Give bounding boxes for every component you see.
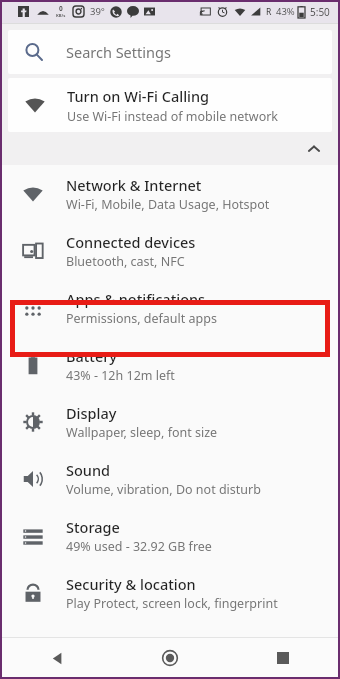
staticText: Search Settings (66, 42, 171, 62)
button[interactable]: Sound (0, 450, 340, 507)
staticText: Sound (66, 460, 111, 480)
staticText: Wallpaper, sleep, font size (66, 424, 218, 441)
button[interactable]: Recents (261, 637, 305, 679)
staticText: 5:50 (310, 5, 330, 19)
staticText: Network & Internet (66, 175, 202, 195)
button[interactable]: Turn on Wi-Fi Calling (8, 78, 332, 132)
button[interactable]: Storage (0, 507, 340, 564)
staticText: Connected devices (66, 232, 196, 252)
button[interactable]: Back (35, 637, 79, 679)
staticText: Apps & notifications (66, 289, 206, 309)
staticText: Turn on Wi-Fi Calling (67, 86, 210, 106)
button[interactable]: Security & location (0, 564, 340, 621)
button[interactable]: Home (148, 637, 192, 679)
staticText: 0 (59, 4, 63, 13)
button[interactable]: Connected devices (0, 222, 340, 279)
staticText: Security & location (66, 574, 196, 594)
staticText: R (266, 6, 272, 18)
staticText: Bluetooth, cast, NFC (66, 253, 185, 270)
staticText: KB/s (56, 13, 66, 19)
button[interactable]: Apps & notifications (0, 279, 340, 336)
staticText: 39° (90, 5, 105, 18)
staticText: Battery (66, 346, 117, 366)
staticText: Play Protect, screen lock, fingerprint (66, 595, 278, 612)
staticText: Permissions, default apps (66, 310, 217, 327)
staticText: Volume, vibration, Do not disturb (66, 481, 261, 498)
staticText: 49% used - 32.92 GB free (66, 538, 212, 555)
button[interactable]: Collapse suggestions (298, 133, 330, 165)
staticText: Storage (66, 517, 120, 537)
staticText: Display (66, 403, 117, 423)
staticText: Use Wi-Fi instead of mobile network (67, 108, 279, 125)
button[interactable]: Network & Internet (0, 165, 340, 222)
button[interactable]: Display (0, 393, 340, 450)
staticText: 43% (276, 5, 295, 18)
staticText: 43% - 12h 12m left (66, 367, 175, 384)
staticText: Wi-Fi, Mobile, Data Usage, Hotspot (66, 196, 270, 213)
button[interactable]: Battery (0, 336, 340, 393)
button[interactable]: Search Settings (8, 30, 332, 74)
